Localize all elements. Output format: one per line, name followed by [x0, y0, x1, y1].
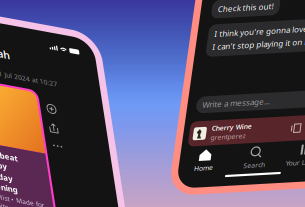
button[interactable]: More [35, 125, 47, 133]
staticText: Cherry Wine [247, 128, 287, 137]
staticText: Check this out! [236, 6, 292, 17]
button[interactable]: Search [269, 153, 305, 177]
staticText: Playlist • Made for Benito [0, 188, 17, 206]
button[interactable]: Add [35, 86, 46, 97]
button[interactable]: Home [219, 153, 269, 177]
staticText: I can't stop playing it on repeat! [236, 45, 305, 55]
staticText: Home [234, 168, 253, 177]
staticText: Write a message... [234, 103, 302, 114]
button[interactable]: Share [35, 106, 45, 116]
staticText: grentperez [247, 138, 282, 146]
staticText: I think you're gonna love this one. [236, 31, 305, 42]
